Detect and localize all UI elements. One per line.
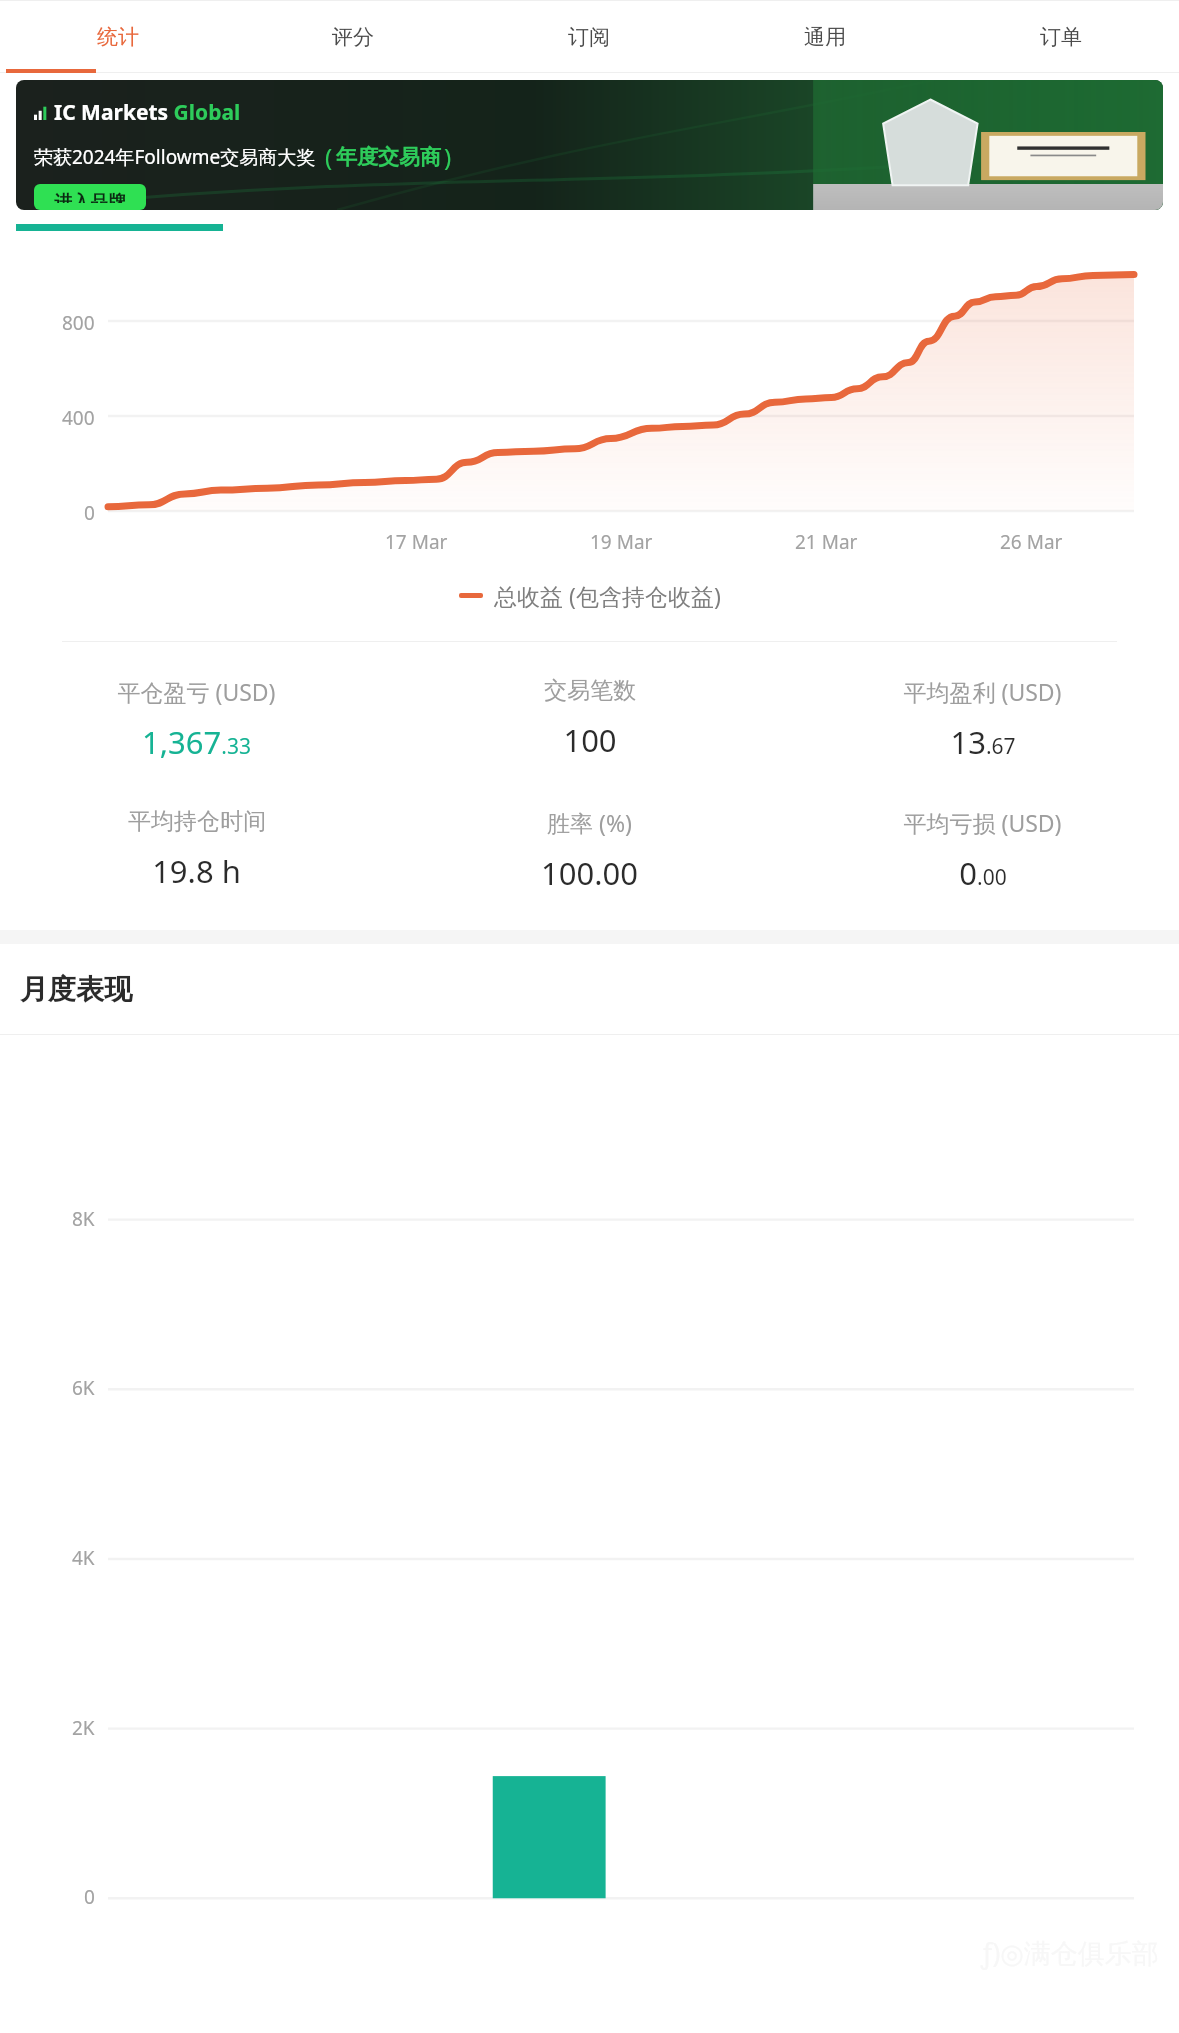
- staticText: IC Markets Global: [54, 98, 241, 127]
- staticText: (: [325, 140, 333, 173]
- staticText: 总收益 (包含持仓收益): [494, 580, 721, 611]
- staticText: 100.00: [541, 852, 638, 894]
- button[interactable]: IC Markets Global 广告横幅: [16, 80, 1163, 210]
- staticText: 19 Mar: [590, 529, 653, 555]
- staticText: 胜率 (%): [547, 807, 632, 838]
- staticText: ): [444, 140, 452, 173]
- staticText: 统计: [97, 24, 139, 50]
- staticText: 平均持仓时间: [128, 807, 266, 836]
- staticText: 0.00: [959, 852, 1007, 894]
- staticText: ƒ)◎满仓俱乐部: [981, 1934, 1159, 1971]
- staticText: 平仓盈亏 (USD): [117, 676, 276, 707]
- button[interactable]: 交易笔数: [393, 676, 786, 761]
- staticText: 800: [62, 310, 95, 336]
- button[interactable]: 胜率 (%): [393, 807, 786, 894]
- staticText: 0: [84, 500, 95, 526]
- button[interactable]: 统计: [0, 0, 235, 73]
- staticText: 8K: [72, 1206, 95, 1232]
- button[interactable]: 平均亏损 (USD): [786, 807, 1179, 894]
- staticText: 平均盈利 (USD): [903, 676, 1062, 707]
- staticText: 交易笔数: [544, 676, 636, 705]
- staticText: 400: [62, 405, 95, 431]
- button[interactable]: 平均持仓时间: [0, 807, 393, 892]
- staticText: 荣获2024年Followme交易商大奖: [34, 144, 316, 170]
- staticText: 月度表现: [20, 972, 132, 1007]
- staticText: 17 Mar: [385, 529, 448, 555]
- staticText: 年度交易商: [336, 144, 441, 170]
- button[interactable]: 订单: [943, 0, 1179, 73]
- button[interactable]: 平均盈利 (USD): [786, 676, 1179, 763]
- button[interactable]: 进入品牌: [34, 184, 146, 210]
- staticText: 1,367.33: [142, 721, 251, 763]
- staticText: 19.8 h: [152, 850, 241, 892]
- staticText: 评分: [332, 24, 374, 50]
- button[interactable]: 平仓盈亏 (USD): [0, 676, 393, 763]
- staticText: 100: [563, 719, 617, 761]
- staticText: 6K: [72, 1375, 95, 1401]
- button[interactable]: 评分: [235, 0, 471, 73]
- staticText: 21 Mar: [795, 529, 858, 555]
- staticText: 4K: [72, 1545, 95, 1571]
- staticText: 平均亏损 (USD): [903, 807, 1062, 838]
- staticText: 2K: [72, 1715, 95, 1741]
- staticText: 进入品牌: [54, 191, 126, 203]
- staticText: 订阅: [568, 24, 610, 50]
- staticText: 通用: [804, 24, 846, 50]
- staticText: 26 Mar: [1000, 529, 1063, 555]
- button[interactable]: 订阅: [471, 0, 707, 73]
- staticText: 0: [84, 1884, 95, 1910]
- button[interactable]: 通用: [707, 0, 943, 73]
- staticText: 13.67: [950, 721, 1016, 763]
- staticText: 订单: [1040, 24, 1082, 50]
